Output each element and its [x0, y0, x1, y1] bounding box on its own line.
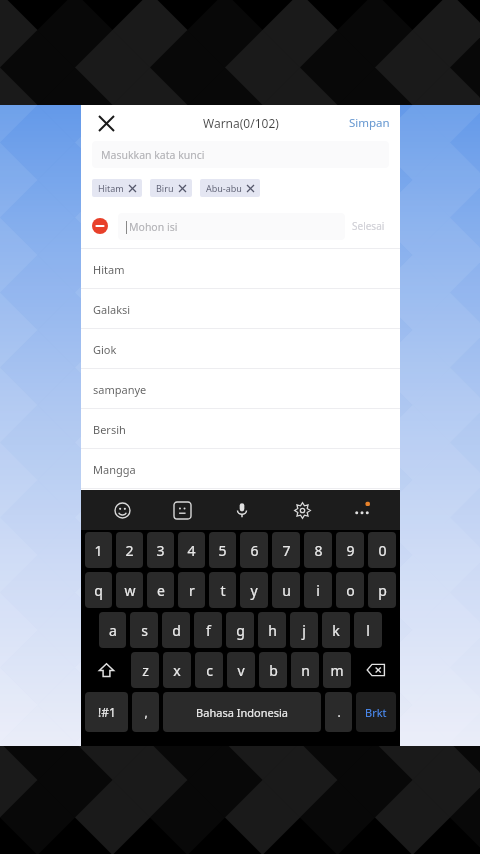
staticText: Masukkan kata kunci — [101, 148, 205, 162]
button[interactable]: i — [304, 572, 332, 608]
button[interactable]: k — [322, 612, 350, 648]
button[interactable]: u — [272, 572, 300, 608]
button[interactable]: w — [116, 572, 143, 608]
button[interactable]: Voice input — [212, 490, 272, 530]
button[interactable]: g — [226, 612, 254, 648]
staticText: n — [301, 661, 310, 680]
staticText: , — [144, 704, 148, 720]
staticText: Hitam — [98, 182, 124, 194]
button[interactable]: Abu-abu — [200, 179, 260, 197]
button[interactable]: Remove — [91, 217, 109, 235]
button[interactable]: 3 — [147, 532, 174, 568]
staticText: i — [316, 581, 320, 600]
button[interactable]: 0 — [368, 532, 396, 568]
staticText: f — [206, 621, 211, 640]
button[interactable]: sampanye — [81, 369, 400, 409]
staticText: Warna(0/102) — [203, 115, 279, 131]
staticText: j — [302, 621, 306, 640]
button[interactable]: Bahasa Indonesia — [163, 692, 321, 732]
button[interactable]: !#1 — [85, 692, 128, 732]
staticText: Giok — [93, 342, 117, 357]
button[interactable]: Brkt — [356, 692, 396, 732]
button[interactable]: Mohon isi — [118, 213, 345, 240]
staticText: o — [346, 581, 355, 600]
button[interactable]: l — [354, 612, 382, 648]
staticText: w — [124, 581, 136, 600]
button[interactable]: Close — [91, 108, 121, 138]
button[interactable]: , — [132, 692, 159, 732]
button[interactable]: 5 — [209, 532, 236, 568]
staticText: g — [236, 621, 245, 640]
button[interactable]: Shift — [85, 652, 127, 688]
button[interactable]: 7 — [272, 532, 300, 568]
button[interactable]: b — [259, 652, 287, 688]
button[interactable]: Stickers — [152, 490, 212, 530]
button[interactable]: z — [131, 652, 159, 688]
button[interactable]: f — [194, 612, 222, 648]
button[interactable]: y — [240, 572, 268, 608]
button[interactable]: 1 — [85, 532, 112, 568]
button[interactable]: r — [178, 572, 205, 608]
staticText: b — [269, 661, 278, 680]
staticText: p — [378, 581, 387, 600]
button[interactable]: Selesai — [345, 213, 392, 239]
button[interactable]: 4 — [178, 532, 205, 568]
button[interactable]: c — [195, 652, 223, 688]
staticText: !#1 — [98, 704, 116, 720]
staticText: z — [142, 661, 149, 680]
staticText: Mohon isi — [129, 220, 178, 234]
button[interactable]: More options — [332, 490, 392, 530]
button[interactable]: Backspace — [355, 652, 396, 688]
button[interactable]: 9 — [336, 532, 364, 568]
button[interactable]: q — [85, 572, 112, 608]
button[interactable]: h — [258, 612, 286, 648]
staticText: Selesai — [352, 219, 385, 233]
button[interactable]: Settings — [272, 490, 332, 530]
button[interactable]: o — [336, 572, 364, 608]
button[interactable]: Masukkan kata kunci — [92, 141, 389, 168]
staticText: Hitam — [93, 262, 125, 277]
button[interactable]: Hitam — [92, 179, 142, 197]
staticText: c — [206, 661, 213, 680]
button[interactable]: . — [325, 692, 352, 732]
button[interactable]: Giok — [81, 329, 400, 369]
button[interactable]: 2 — [116, 532, 143, 568]
staticText: 3 — [156, 541, 165, 560]
button[interactable]: Simpan — [339, 109, 400, 137]
staticText: Galaksi — [93, 302, 131, 317]
button[interactable]: Biru — [150, 179, 192, 197]
staticText: Brkt — [365, 705, 387, 720]
staticText: 4 — [187, 541, 196, 560]
button[interactable]: t — [209, 572, 236, 608]
button[interactable]: m — [323, 652, 351, 688]
staticText: 1 — [94, 541, 103, 560]
button[interactable]: 8 — [304, 532, 332, 568]
staticText: m — [330, 661, 344, 680]
button[interactable]: n — [291, 652, 319, 688]
button[interactable]: Emoji — [93, 490, 152, 530]
button[interactable]: s — [130, 612, 158, 648]
button[interactable]: p — [368, 572, 396, 608]
button[interactable]: Bersih — [81, 409, 400, 449]
staticText: 2 — [125, 541, 134, 560]
button[interactable]: d — [162, 612, 190, 648]
staticText: 6 — [250, 541, 259, 560]
button[interactable]: Mangga — [81, 449, 400, 489]
staticText: v — [237, 661, 245, 680]
button[interactable]: x — [163, 652, 191, 688]
staticText: r — [189, 581, 195, 600]
staticText: Biru — [156, 182, 174, 194]
button[interactable]: v — [227, 652, 255, 688]
staticText: q — [94, 581, 103, 600]
staticText: Bersih — [93, 422, 126, 437]
staticText: . — [337, 704, 341, 720]
button[interactable]: e — [147, 572, 174, 608]
button[interactable]: Galaksi — [81, 289, 400, 329]
button[interactable]: j — [290, 612, 318, 648]
button[interactable]: a — [99, 612, 126, 648]
staticText: Simpan — [349, 115, 390, 131]
staticText: 0 — [378, 541, 387, 560]
staticText: Abu-abu — [206, 182, 242, 194]
button[interactable]: 6 — [240, 532, 268, 568]
button[interactable]: Hitam — [81, 249, 400, 289]
